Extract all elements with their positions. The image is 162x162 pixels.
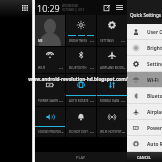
button[interactable]: SOUND PROFILE (35, 107, 65, 137)
button[interactable]: Notifications (115, 3, 124, 12)
staticText: AUTO ROTATE (69, 99, 89, 103)
button[interactable]: Settings (127, 56, 162, 72)
staticText: Airplan (147, 109, 162, 116)
staticText: BRIGHTNESS (69, 39, 88, 43)
button[interactable]: DO NOT DIST. (66, 107, 96, 137)
staticText: CANCEL (137, 155, 152, 160)
staticText: Brightne (147, 45, 162, 52)
staticText: Settings (147, 61, 162, 68)
staticText: PLAY (76, 155, 86, 160)
staticText: WEDNESDAY (62, 4, 78, 8)
staticText: MOBILE DATA (100, 99, 120, 103)
staticText: WI-FI HOTSPOT (100, 130, 122, 134)
staticText: POWER SAVER (38, 99, 59, 103)
staticText: Bluetoo (147, 93, 162, 100)
button[interactable]: MOBILE DATA (97, 74, 127, 106)
staticText: Wi-Fi (147, 77, 159, 84)
staticText: OCTOBER 2, 2013 (62, 8, 85, 12)
button[interactable]: Brightne (127, 40, 162, 56)
button[interactable]: Wi-Fi (127, 72, 162, 88)
staticText: SETTINGS (100, 39, 114, 43)
button[interactable]: WI-FI HOTSPOT (97, 107, 127, 137)
staticText: DO NOT DIST. (69, 130, 89, 134)
button[interactable]: Auto Ro (127, 136, 162, 152)
button[interactable]: All apps (20, 3, 30, 13)
button[interactable]: Edit (102, 3, 111, 12)
button[interactable]: Airplan (127, 104, 162, 120)
button[interactable]: Bluetoo (127, 88, 162, 104)
button[interactable]: BRIGHTNESS (66, 15, 96, 46)
button[interactable]: CANCEL (127, 152, 162, 162)
staticText: AIRPLANE MODE (100, 66, 124, 70)
button[interactable]: Power S (127, 120, 162, 136)
staticText: Auto Ro (147, 141, 162, 148)
button[interactable]: AIRPLANE MODE (97, 47, 127, 73)
button[interactable]: AUTO ROTATE (66, 74, 96, 106)
staticText: 10:29 (37, 2, 60, 14)
button[interactable]: User Ca (127, 24, 162, 40)
staticText: ME (38, 39, 43, 43)
staticText: Quick Settings (130, 12, 161, 18)
staticText: WI-FI (38, 66, 46, 70)
button[interactable]: SETTINGS (97, 15, 127, 46)
button[interactable]: ME (35, 15, 65, 46)
button[interactable]: POWER SAVER (35, 74, 65, 106)
button[interactable]: WI-FI (35, 47, 65, 73)
staticText: www.android-revolution-hd.blogspot.com/ (28, 76, 128, 82)
staticText: BLUETOOTH (69, 66, 87, 70)
button[interactable]: PLAY (35, 152, 127, 162)
staticText: SOUND PROFILE (38, 130, 62, 134)
staticText: User Ca (147, 29, 162, 36)
staticText: Power S (147, 125, 162, 132)
button[interactable]: BLUETOOTH (66, 47, 96, 73)
